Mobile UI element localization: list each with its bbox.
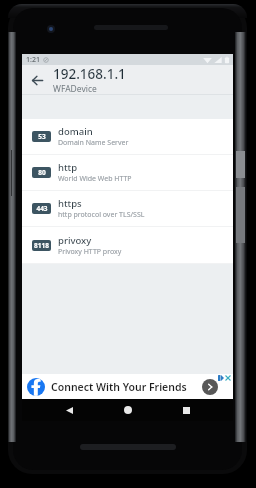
button[interactable]: Recents [175,399,197,421]
staticText: privoxy [58,234,92,247]
staticText: Connect With Your Friends [51,380,187,394]
staticText: http protocol over TLS/SSL [58,210,145,220]
staticText: Domain Name Server [58,138,129,148]
staticText: 53 [38,132,46,141]
button[interactable]: Home [117,399,139,421]
button[interactable]: Back [58,399,80,421]
staticText: https [58,197,82,210]
button[interactable]: Back [22,65,53,95]
button[interactable]: 8118 [22,227,233,264]
button[interactable]: Connect With Your Friends [22,374,233,399]
staticText: 80 [38,168,46,177]
button[interactable]: 80 [22,155,233,191]
staticText: 443 [36,204,48,213]
button[interactable]: 443 [22,191,233,227]
staticText: http [58,161,78,174]
staticText: Privoxy HTTP proxy [58,247,122,257]
staticText: 192.168.1.1 [53,65,126,83]
staticText: World Wide Web HTTP [58,174,132,184]
staticText: domain [58,125,93,138]
staticText: 1:21 [26,55,40,65]
staticText: 8118 [34,241,49,250]
staticText: WFADevice [53,83,97,95]
button[interactable]: 53 [22,119,233,155]
